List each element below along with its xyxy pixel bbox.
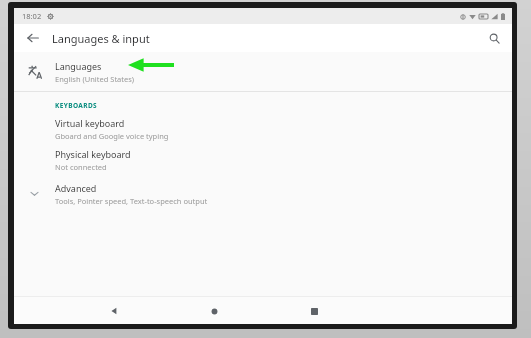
staticText: Languages	[55, 60, 102, 72]
button[interactable]: Back	[103, 300, 125, 322]
staticText: Gboard and Google voice typing	[55, 131, 169, 141]
button[interactable]: Advanced	[14, 179, 512, 208]
button[interactable]: Virtual keyboard	[14, 117, 512, 141]
staticText: Advanced	[55, 182, 97, 194]
button[interactable]: Languages	[14, 52, 512, 91]
staticText: English (United States)	[55, 74, 135, 84]
button[interactable]: Home	[203, 300, 225, 322]
button[interactable]: Recent apps	[303, 300, 325, 322]
staticText: Virtual keyboard	[55, 117, 125, 129]
staticText: Physical keyboard	[55, 148, 131, 160]
staticText: KEYBOARDS	[55, 101, 98, 110]
button[interactable]: Search	[483, 27, 505, 49]
staticText: 18:02	[22, 11, 42, 21]
staticText: Not connected	[55, 162, 107, 172]
staticText: Tools, Pointer speed, Text-to-speech out…	[55, 196, 208, 206]
button[interactable]: Physical keyboard	[14, 148, 512, 172]
button[interactable]: Navigate up	[22, 27, 44, 49]
staticText: Languages & input	[52, 31, 150, 46]
